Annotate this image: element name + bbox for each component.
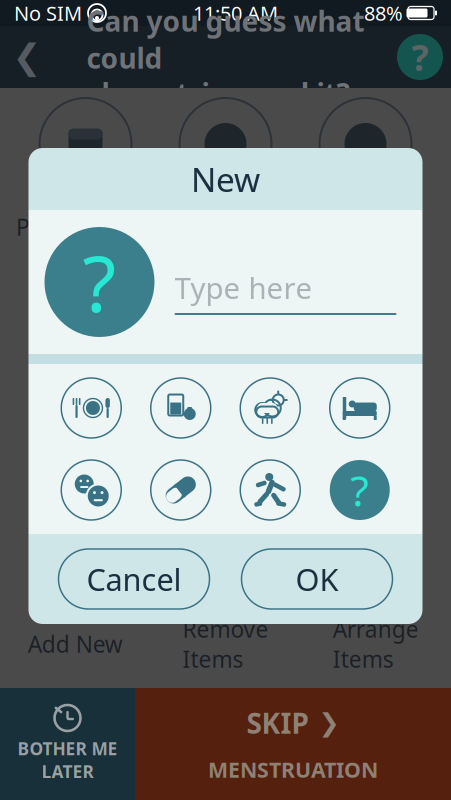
staticText: Can you guess what could [86, 2, 364, 77]
staticText: ? [82, 231, 116, 333]
staticText: SKIP [246, 704, 308, 741]
staticText: ❯ [318, 708, 339, 737]
button[interactable]: Choose icon [44, 227, 154, 337]
staticText: have triggered it? [101, 75, 349, 112]
staticText: Cancel [86, 559, 181, 599]
staticText: Remove Items [182, 614, 268, 674]
button[interactable]: Sleep [330, 378, 390, 438]
button[interactable]: Cancel [58, 549, 209, 609]
staticText: Type here [174, 268, 312, 307]
staticText: Arrange Items [333, 614, 419, 674]
staticText: 88% [364, 0, 403, 26]
staticText: Add New [28, 629, 123, 659]
staticText: 11:50 AM [193, 0, 278, 26]
button[interactable]: Food [61, 378, 121, 438]
button[interactable]: BOTHER ME [0, 688, 135, 800]
staticText: LATER [41, 760, 93, 783]
button[interactable]: Help [389, 26, 451, 88]
staticText: No SIM [14, 0, 82, 26]
button[interactable]: SKIP [135, 688, 451, 800]
button[interactable]: OK [241, 549, 392, 609]
button[interactable]: Weather [240, 378, 300, 438]
staticText: ❮ [12, 37, 41, 77]
button[interactable]: Other [330, 460, 390, 520]
staticText: MENSTRUATION [208, 755, 378, 784]
staticText: Pr [16, 212, 39, 242]
button[interactable]: Mood [61, 460, 121, 520]
button[interactable]: Back [0, 26, 54, 88]
staticText: BOTHER ME [17, 737, 117, 760]
button[interactable]: Exercise [240, 460, 300, 520]
button[interactable]: Drink [151, 378, 211, 438]
staticText: New [191, 157, 260, 201]
staticText: OK [295, 559, 338, 599]
button[interactable]: Medication [151, 460, 211, 520]
staticText: ? [350, 462, 369, 518]
staticText: ? [411, 33, 428, 81]
